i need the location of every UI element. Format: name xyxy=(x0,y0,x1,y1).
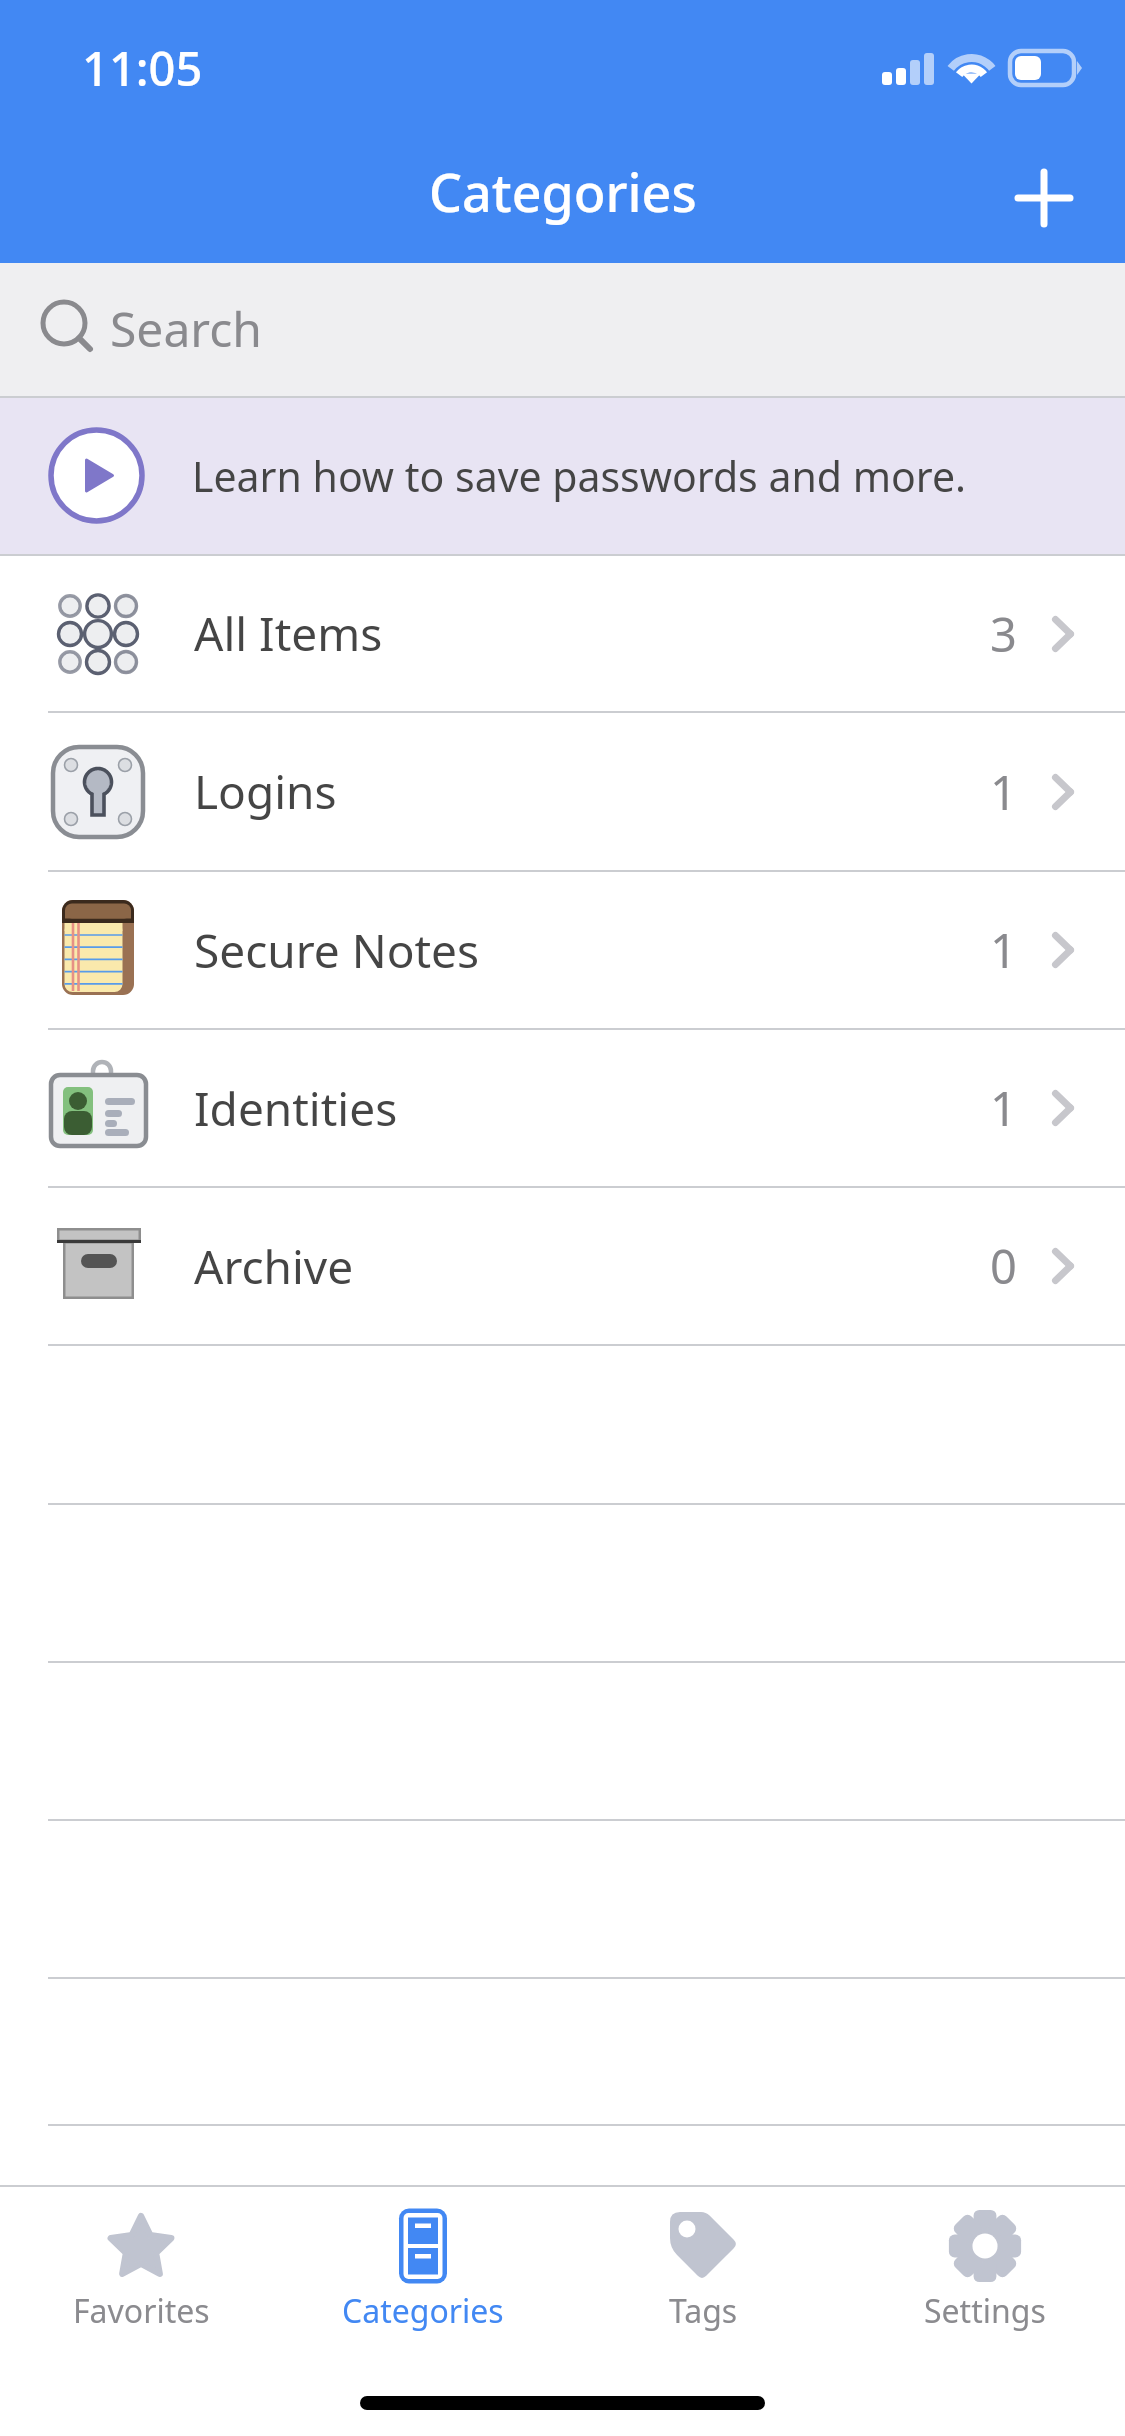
staticText: Archive xyxy=(194,1235,354,1298)
button[interactable]: Archive xyxy=(0,1188,1125,1346)
staticText: Secure Notes xyxy=(194,919,480,982)
button[interactable]: Favorites xyxy=(0,2187,282,2333)
staticText: Settings xyxy=(924,2289,1046,2333)
staticText: 3 xyxy=(990,602,1017,666)
staticText: 1 xyxy=(990,1076,1017,1140)
button[interactable]: Identities xyxy=(0,1030,1125,1188)
staticText: Identities xyxy=(194,1077,398,1140)
staticText: Learn how to save passwords and more. xyxy=(192,448,966,504)
staticText: Favorites xyxy=(73,2289,210,2333)
staticText: Categories xyxy=(342,2289,504,2333)
button[interactable]: Learn how to save passwords and more. xyxy=(0,398,1125,554)
staticText: Search xyxy=(110,296,262,361)
button[interactable]: Tags xyxy=(563,2187,844,2333)
button[interactable]: Categories xyxy=(282,2187,563,2333)
button[interactable]: Logins xyxy=(0,713,1125,872)
staticText: 1 xyxy=(990,760,1017,824)
button[interactable]: All Items xyxy=(0,556,1125,713)
staticText: Categories xyxy=(429,156,697,227)
button[interactable]: Secure Notes xyxy=(0,872,1125,1030)
staticText: Logins xyxy=(194,760,337,823)
staticText: 1 xyxy=(990,918,1017,982)
staticText: 11:05 xyxy=(82,36,203,100)
button[interactable]: Add item xyxy=(994,148,1094,248)
button[interactable]: Settings xyxy=(844,2187,1125,2333)
staticText: 0 xyxy=(990,1234,1017,1298)
staticText: Tags xyxy=(669,2289,738,2333)
button[interactable]: Search xyxy=(0,263,1125,396)
staticText: All Items xyxy=(194,602,383,665)
